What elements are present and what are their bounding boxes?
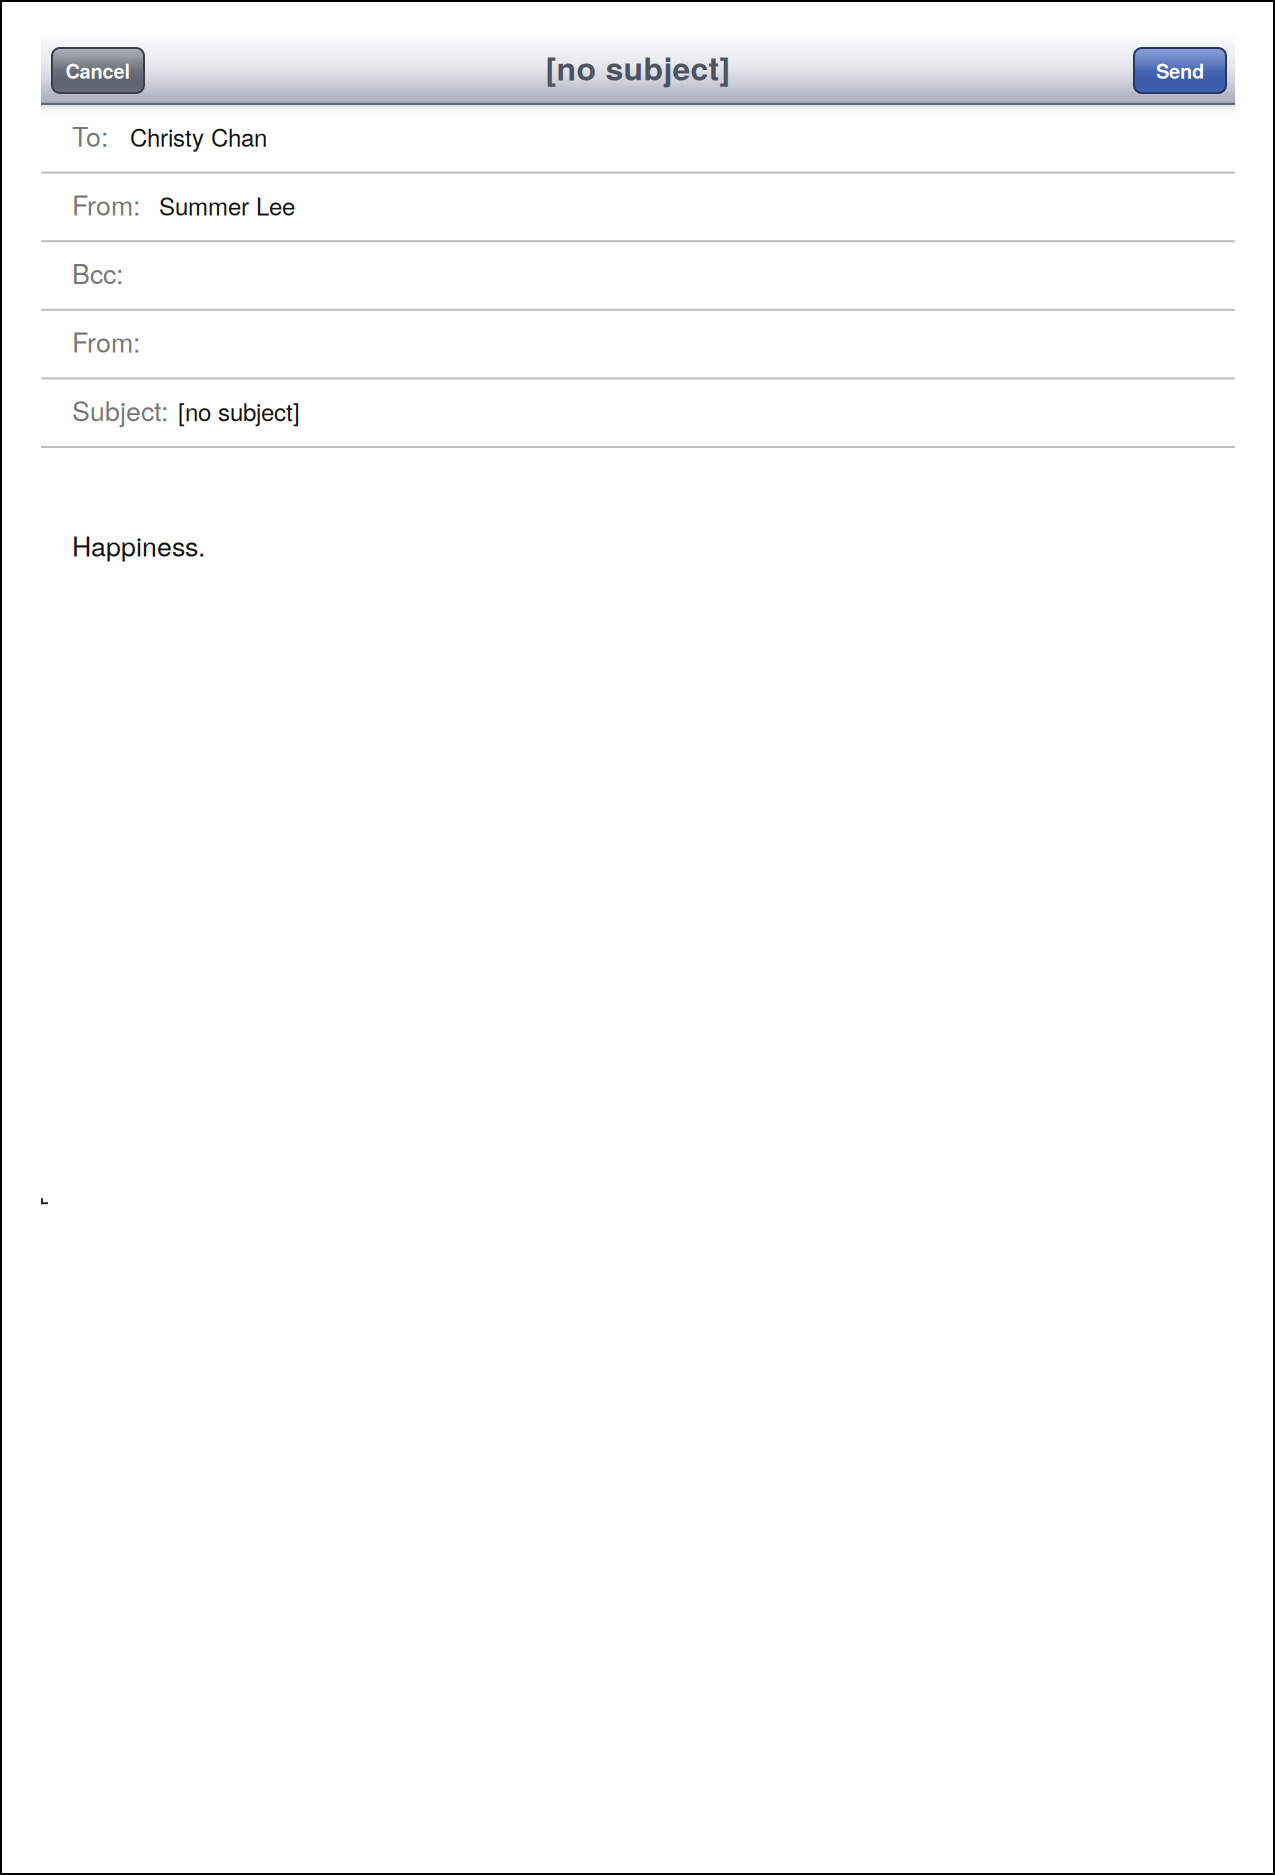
button[interactable]: Happiness. [41, 448, 1235, 564]
staticText: Subject: [72, 391, 168, 429]
button[interactable]: From: [41, 174, 1235, 240]
button[interactable]: Cancel [52, 48, 144, 93]
staticText: Christy Chan [130, 119, 267, 154]
button[interactable]: To: [41, 105, 1235, 172]
staticText: [no subject] [178, 394, 300, 428]
staticText: Cancel [65, 56, 130, 85]
staticText: Happiness. [72, 526, 205, 564]
staticText: [no subject] [545, 45, 730, 90]
staticText: To: [72, 116, 108, 154]
button[interactable]: From: [41, 311, 1235, 377]
staticText: Summer Lee [159, 188, 295, 222]
staticText: From: [72, 322, 140, 360]
staticText: Bcc: [72, 253, 123, 292]
button[interactable]: Send [1134, 48, 1226, 93]
staticText: Send [1156, 56, 1204, 85]
staticText: From: [72, 185, 140, 223]
button[interactable]: Subject: [41, 379, 1235, 446]
button[interactable]: Bcc: [41, 242, 1235, 309]
